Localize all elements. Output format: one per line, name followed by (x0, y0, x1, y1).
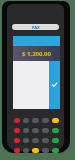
button[interactable]: key (23, 118, 29, 123)
button[interactable]: key (42, 118, 49, 123)
button[interactable]: key (52, 138, 59, 143)
button[interactable]: key (23, 148, 29, 153)
button[interactable]: key (23, 128, 29, 133)
staticText: PAX (32, 25, 40, 30)
button[interactable]: key (14, 148, 20, 153)
button[interactable]: key (42, 128, 49, 133)
button[interactable]: key (52, 128, 59, 133)
button[interactable]: key (52, 148, 59, 153)
button[interactable]: key (42, 138, 49, 143)
button[interactable]: key (32, 138, 39, 143)
button[interactable]: key (32, 128, 39, 133)
button[interactable]: key (14, 138, 20, 143)
button[interactable]: key (14, 118, 20, 123)
staticText: $ 1,200.00 (22, 50, 51, 58)
button[interactable]: key (52, 118, 59, 123)
button[interactable]: key (14, 128, 20, 133)
button[interactable]: Confirm (49, 61, 60, 109)
button[interactable]: key (42, 148, 49, 153)
button[interactable]: key (32, 148, 39, 153)
button[interactable]: key (32, 118, 39, 123)
button[interactable]: key (23, 138, 29, 143)
